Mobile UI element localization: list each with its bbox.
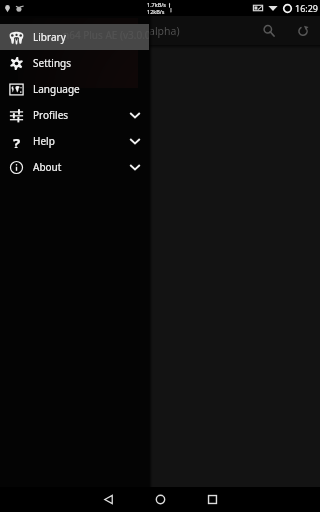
staticText: n64 Plus AE (v3.0.0 (63, 28, 151, 42)
button[interactable]: Search (252, 16, 286, 45)
button[interactable]: Refresh (286, 16, 320, 45)
staticText: ? (13, 133, 21, 148)
staticText: Settings (33, 56, 72, 70)
staticText: About (33, 160, 62, 174)
button[interactable]: Profiles (0, 102, 149, 128)
button[interactable]: Home (143, 487, 177, 512)
staticText: Library (33, 30, 66, 44)
button[interactable]: Back (91, 487, 125, 512)
staticText: Mupen64Plus AE (v3.0.0-alpha) (28, 24, 180, 38)
button[interactable]: Library (0, 24, 149, 50)
button[interactable]: ? (0, 128, 149, 154)
staticText: Language (33, 82, 80, 96)
staticText: Profiles (33, 108, 69, 122)
button[interactable]: Language (0, 76, 149, 102)
staticText: Help (33, 134, 55, 148)
button[interactable]: About (0, 154, 149, 180)
staticText: 12kB/s (147, 8, 165, 15)
staticText: 16:29 (295, 2, 319, 14)
button[interactable]: Recents (195, 487, 229, 512)
staticText: 1.7kB/s (147, 1, 166, 8)
button[interactable]: Settings (0, 50, 149, 76)
